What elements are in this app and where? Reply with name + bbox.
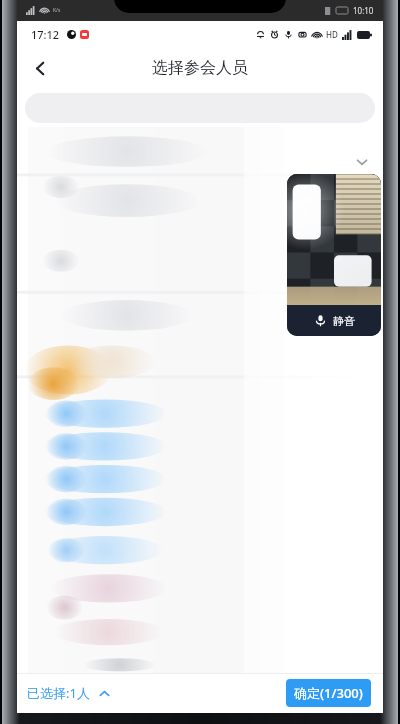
staticText: 静音 — [333, 314, 355, 328]
staticText: HD — [326, 29, 338, 40]
staticText: 已选择:1人 — [27, 684, 90, 702]
button[interactable]: Back — [17, 47, 63, 89]
button[interactable]: Video preview — [287, 174, 381, 336]
staticText: 选择参会人员 — [152, 58, 248, 78]
button[interactable]: 已选择:1人 — [27, 684, 111, 702]
staticText: K/s — [53, 7, 61, 14]
staticText: 10:10 — [353, 5, 374, 16]
button[interactable]: Collapse — [349, 149, 375, 175]
staticText: 确定(1/300) — [294, 684, 363, 702]
button[interactable]: 确定(1/300) — [286, 679, 371, 707]
staticText: 17:12 — [31, 27, 60, 42]
